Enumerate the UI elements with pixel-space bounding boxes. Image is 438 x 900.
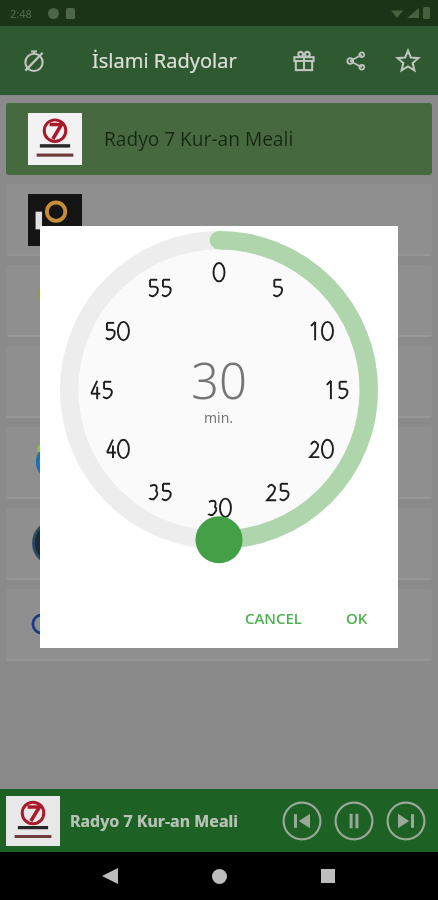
button[interactable]	[6, 427, 432, 499]
button[interactable]	[6, 184, 432, 256]
staticText: 2:48	[10, 6, 32, 21]
button[interactable]: Next	[380, 795, 432, 847]
staticText: OK	[346, 608, 368, 628]
button[interactable]: Radyo 7 Kur-an Meali	[6, 103, 432, 175]
button[interactable]: Share	[330, 35, 382, 87]
staticText: Radyo 7 Kur-an Meali	[70, 810, 270, 832]
staticText: min.	[204, 408, 234, 427]
button[interactable]: Back	[86, 852, 134, 900]
staticText: 30	[191, 347, 247, 414]
staticText: CANCEL	[245, 608, 302, 628]
staticText: Radyo 7 Kur-an Meali	[104, 126, 294, 152]
button[interactable]: Home	[195, 852, 243, 900]
button[interactable]	[6, 508, 432, 580]
button[interactable]: CANCEL	[235, 600, 312, 636]
button[interactable]	[6, 265, 432, 337]
button[interactable]: Sleep timer	[10, 37, 58, 85]
button[interactable]: OK	[336, 600, 378, 636]
button[interactable]: Lalegül Radyo	[6, 589, 432, 661]
staticText: İslami Radyolar	[92, 47, 237, 74]
button[interactable]: Gift	[278, 35, 330, 87]
button[interactable]	[6, 796, 60, 846]
button[interactable]: Pause	[328, 795, 380, 847]
button[interactable]: Recents	[304, 852, 352, 900]
button[interactable]: Favorites	[382, 35, 434, 87]
button[interactable]: Previous	[276, 795, 328, 847]
button[interactable]	[6, 346, 432, 418]
